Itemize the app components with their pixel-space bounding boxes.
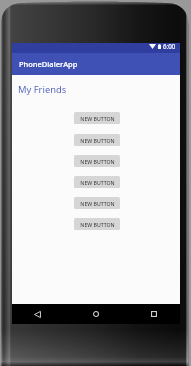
button[interactable]: Recent apps [140, 304, 168, 324]
button[interactable]: NEW BUTTON [74, 176, 120, 188]
button[interactable]: Home [82, 304, 110, 324]
button[interactable]: Back [23, 304, 51, 324]
staticText: NEW BUTTON [80, 221, 115, 228]
button[interactable]: NEW BUTTON [74, 218, 120, 230]
staticText: 6:00 [163, 42, 176, 50]
staticText: NEW BUTTON [80, 115, 115, 122]
staticText: My Friends [18, 83, 67, 96]
button[interactable]: NEW BUTTON [74, 112, 120, 124]
staticText: PhoneDialerApp [19, 59, 78, 69]
staticText: NEW BUTTON [80, 158, 115, 165]
staticText: NEW BUTTON [80, 137, 115, 144]
button[interactable]: NEW BUTTON [74, 155, 120, 167]
button[interactable]: NEW BUTTON [74, 134, 120, 146]
staticText: NEW BUTTON [80, 200, 115, 207]
staticText: NEW BUTTON [80, 179, 115, 186]
button[interactable]: NEW BUTTON [74, 197, 120, 209]
